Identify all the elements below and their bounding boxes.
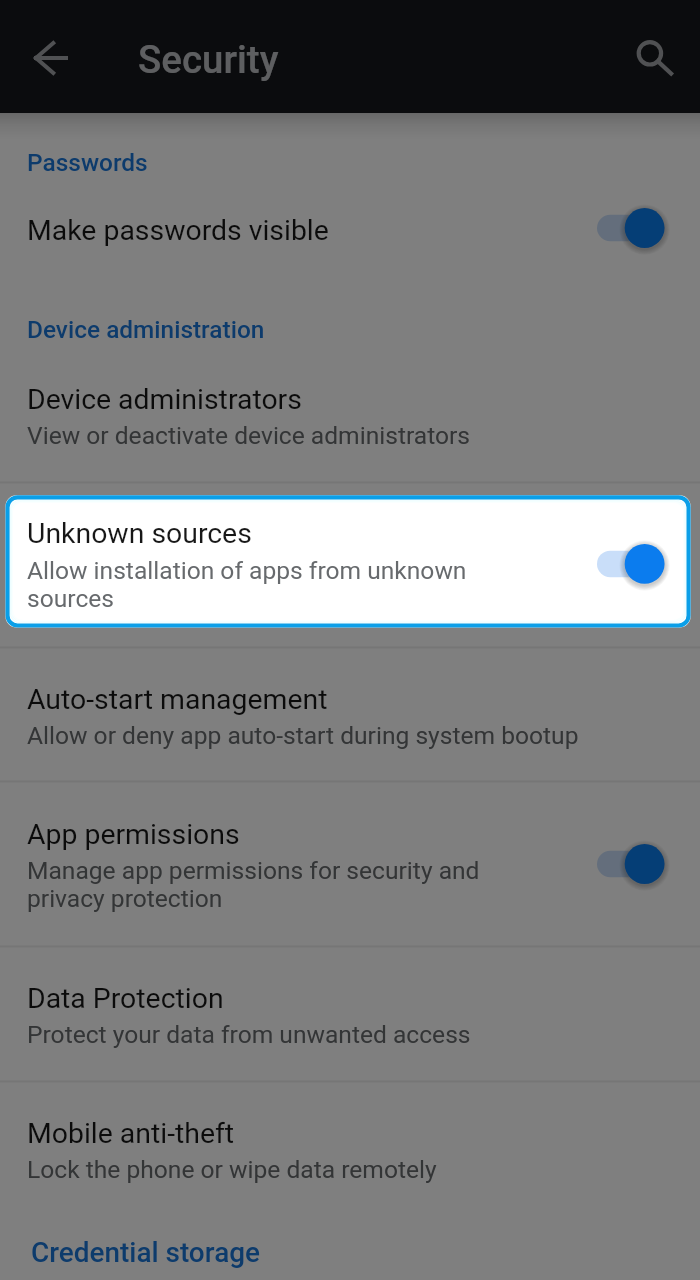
staticText: App permissions bbox=[27, 818, 240, 851]
button[interactable]: Unknown sources bbox=[6, 495, 691, 627]
staticText: Passwords bbox=[27, 148, 148, 177]
staticText: Lock the phone or wipe data remotely bbox=[27, 1155, 437, 1184]
staticText: Allow or deny app auto-start during syst… bbox=[27, 721, 579, 750]
staticText: Auto-start management bbox=[27, 683, 328, 716]
button[interactable]: Mobile anti-theft bbox=[0, 1082, 700, 1215]
button[interactable]: Make passwords visible bbox=[0, 190, 700, 270]
staticText: View or deactivate device administrators bbox=[27, 421, 471, 450]
button[interactable]: Auto-start management bbox=[0, 648, 700, 780]
button[interactable]: Data Protection bbox=[0, 947, 700, 1080]
staticText: Manage app permissions for security and … bbox=[27, 856, 480, 913]
staticText: Mobile anti-theft bbox=[27, 1117, 235, 1150]
button[interactable]: Search bbox=[614, 18, 686, 90]
staticText: Device administrators bbox=[27, 383, 302, 416]
staticText: Unknown sources bbox=[27, 517, 252, 550]
button[interactable]: App permissions bbox=[0, 782, 700, 945]
staticText: Make passwords visible bbox=[27, 214, 329, 247]
staticText: Allow installation of apps from unknown … bbox=[27, 556, 467, 613]
staticText: Device administration bbox=[27, 315, 265, 344]
button[interactable]: Navigate up bbox=[14, 22, 86, 94]
staticText: Data Protection bbox=[27, 982, 224, 1015]
button[interactable]: Device administrators bbox=[0, 360, 700, 481]
staticText: Security bbox=[138, 37, 279, 82]
staticText: Credential storage bbox=[31, 1236, 261, 1269]
staticText: Protect your data from unwanted access bbox=[27, 1020, 471, 1049]
